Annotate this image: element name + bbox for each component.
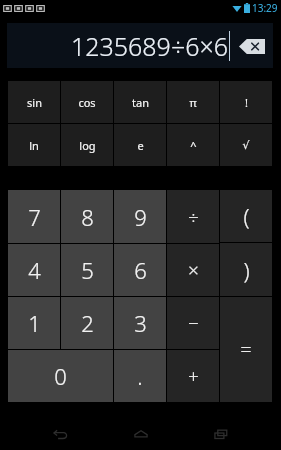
staticText: 1 bbox=[28, 308, 41, 338]
staticText: √ bbox=[242, 139, 250, 152]
button[interactable]: . bbox=[114, 350, 166, 402]
button[interactable]: 0 bbox=[8, 350, 113, 402]
button[interactable]: × bbox=[167, 244, 219, 296]
staticText: 1235689÷6×6 bbox=[70, 29, 228, 63]
button[interactable]: 8 bbox=[61, 190, 113, 243]
button[interactable]: ^ bbox=[167, 124, 219, 166]
button[interactable]: e bbox=[114, 124, 166, 166]
staticText: 7 bbox=[28, 202, 41, 232]
button[interactable]: π bbox=[167, 81, 219, 123]
button[interactable]: log bbox=[61, 124, 113, 166]
staticText: ^ bbox=[190, 138, 197, 153]
button[interactable]: − bbox=[167, 297, 219, 349]
button[interactable]: 9 bbox=[114, 190, 166, 243]
staticText: × bbox=[188, 257, 199, 283]
button[interactable]: 1235689÷6×6 bbox=[7, 23, 273, 68]
staticText: cos bbox=[78, 95, 96, 110]
button[interactable]: Home bbox=[121, 418, 161, 450]
button[interactable]: 3 bbox=[114, 297, 166, 349]
button[interactable]: sin bbox=[8, 81, 60, 123]
staticText: . bbox=[137, 361, 143, 391]
button[interactable]: ( bbox=[220, 190, 272, 242]
staticText: ÷ bbox=[188, 204, 199, 230]
staticText: 3 bbox=[134, 308, 147, 338]
button[interactable]: 1 bbox=[8, 297, 60, 349]
button[interactable]: 2 bbox=[61, 297, 113, 349]
staticText: ( bbox=[243, 201, 250, 231]
staticText: tan bbox=[132, 95, 149, 110]
staticText: e bbox=[137, 138, 144, 153]
staticText: 0 bbox=[54, 361, 67, 391]
button[interactable]: 5 bbox=[61, 244, 113, 296]
button[interactable]: 7 bbox=[8, 190, 60, 243]
button[interactable]: Back bbox=[40, 418, 80, 450]
staticText: ! bbox=[245, 95, 248, 110]
button[interactable]: + bbox=[167, 350, 219, 402]
button[interactable]: 6 bbox=[114, 244, 166, 296]
staticText: ) bbox=[243, 255, 250, 285]
staticText: 2 bbox=[81, 308, 94, 338]
staticText: π bbox=[189, 95, 197, 110]
staticText: ln bbox=[29, 138, 39, 153]
button[interactable]: 4 bbox=[8, 244, 60, 296]
staticText: 8 bbox=[81, 202, 94, 232]
button[interactable]: Recent apps bbox=[201, 418, 241, 450]
button[interactable]: ÷ bbox=[167, 190, 219, 243]
staticText: = bbox=[240, 336, 252, 363]
staticText: 13:29 bbox=[252, 1, 278, 15]
button[interactable]: √ bbox=[220, 124, 272, 166]
button[interactable]: ) bbox=[220, 243, 272, 296]
staticText: 5 bbox=[81, 255, 94, 285]
button[interactable]: tan bbox=[114, 81, 166, 123]
staticText: 6 bbox=[134, 255, 147, 285]
staticText: 9 bbox=[134, 202, 147, 232]
staticText: + bbox=[188, 363, 199, 389]
staticText: sin bbox=[27, 95, 42, 110]
button[interactable]: Backspace bbox=[239, 39, 265, 54]
button[interactable]: cos bbox=[61, 81, 113, 123]
staticText: log bbox=[79, 138, 96, 153]
staticText: 4 bbox=[28, 255, 41, 285]
button[interactable]: ln bbox=[8, 124, 60, 166]
button[interactable]: ! bbox=[220, 81, 272, 123]
button[interactable]: = bbox=[220, 297, 272, 402]
staticText: − bbox=[188, 310, 199, 336]
